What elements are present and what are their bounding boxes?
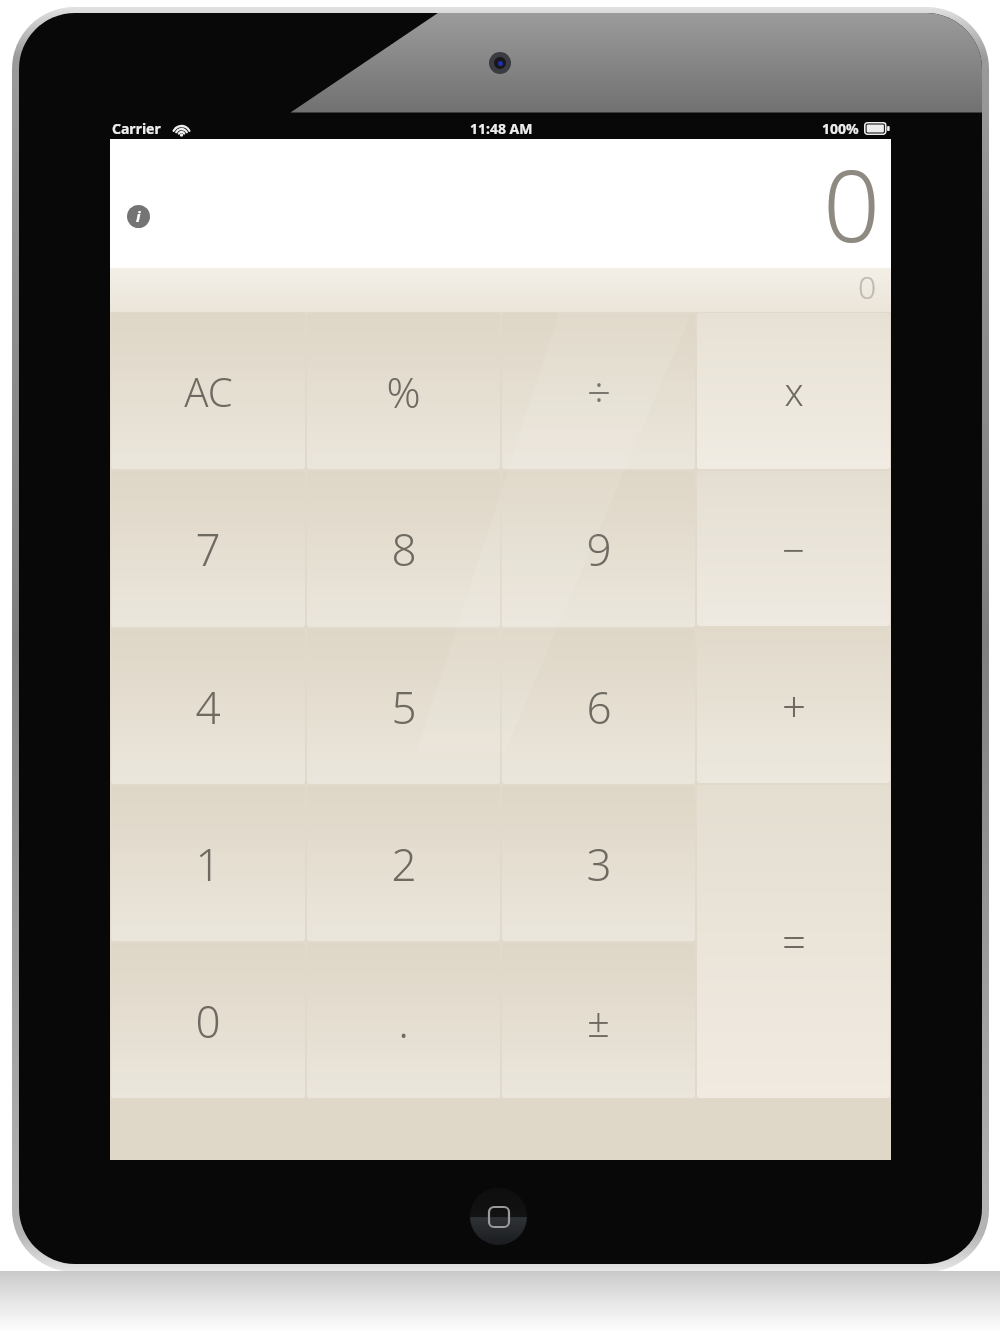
button[interactable]: 3 bbox=[502, 786, 695, 941]
staticText: 9 bbox=[586, 519, 612, 579]
staticText: x bbox=[784, 365, 804, 417]
button[interactable]: Plus bbox=[697, 628, 890, 783]
staticText: 6 bbox=[586, 677, 612, 737]
button[interactable]: 8 bbox=[307, 471, 500, 627]
staticText: 3 bbox=[586, 834, 612, 894]
staticText: 0 bbox=[195, 991, 221, 1051]
button[interactable]: . bbox=[307, 943, 500, 1098]
staticText: ÷ bbox=[587, 363, 611, 420]
staticText: 7 bbox=[195, 519, 221, 579]
staticText: % bbox=[386, 363, 421, 420]
staticText: 0 bbox=[858, 265, 877, 309]
button[interactable]: Info bbox=[118, 196, 158, 236]
staticText: 8 bbox=[391, 519, 417, 579]
staticText: 11:48 AM bbox=[470, 119, 533, 138]
button[interactable]: 9 bbox=[502, 471, 695, 627]
button[interactable]: 2 bbox=[307, 786, 500, 941]
button[interactable]: ÷ bbox=[502, 313, 695, 469]
staticText: − bbox=[782, 522, 805, 576]
button[interactable]: Minus bbox=[697, 471, 890, 626]
button[interactable]: 4 bbox=[111, 629, 305, 784]
button[interactable]: AC bbox=[111, 313, 305, 469]
staticText: ± bbox=[587, 994, 610, 1048]
button[interactable]: 1 bbox=[111, 786, 305, 941]
staticText: + bbox=[782, 677, 806, 734]
staticText: 100% bbox=[822, 119, 859, 138]
staticText: Carrier bbox=[112, 119, 161, 138]
button[interactable]: Home bbox=[470, 1188, 527, 1245]
button[interactable]: 5 bbox=[307, 629, 500, 784]
button[interactable]: 7 bbox=[111, 471, 305, 627]
staticText: 5 bbox=[391, 677, 417, 737]
button[interactable]: Equals bbox=[697, 785, 890, 1098]
staticText: 2 bbox=[391, 834, 417, 894]
button[interactable]: ± bbox=[502, 943, 695, 1098]
staticText: = bbox=[782, 913, 806, 970]
button[interactable]: % bbox=[307, 313, 500, 469]
button[interactable]: 0 bbox=[111, 943, 305, 1098]
button[interactable]: 6 bbox=[502, 629, 695, 784]
staticText: AC bbox=[184, 364, 233, 418]
button[interactable]: Multiply bbox=[697, 313, 890, 469]
staticText: 1 bbox=[195, 834, 221, 894]
staticText: 0 bbox=[823, 135, 881, 264]
staticText: i bbox=[136, 206, 141, 226]
staticText: . bbox=[398, 991, 409, 1051]
staticText: 4 bbox=[195, 677, 221, 737]
